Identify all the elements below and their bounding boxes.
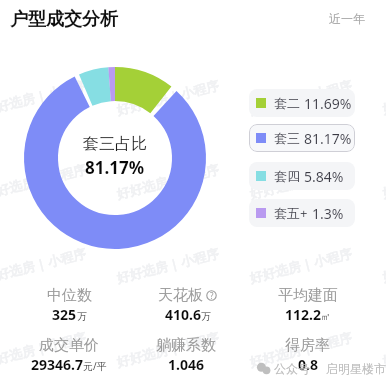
staticText: 成交单价 [39, 336, 99, 355]
other: 说明 [206, 290, 217, 301]
staticText: 81.17% [304, 129, 352, 148]
staticText: 万 [201, 310, 211, 323]
staticText: 平均建面 [278, 286, 338, 305]
staticText: 躺赚系数 [156, 336, 216, 355]
staticText: 1.3% [312, 204, 344, 223]
staticText: 套三占比 [83, 134, 147, 154]
staticText: 325 [52, 305, 77, 324]
staticText: 户型成交分析 [10, 8, 118, 31]
staticText: 112.2 [285, 305, 321, 324]
button[interactable]: 躺赚系数 [124, 336, 248, 374]
button[interactable]: 套二 [249, 89, 355, 117]
staticText: 套四 [274, 168, 300, 184]
staticText: ? [210, 290, 214, 301]
button[interactable]: 成交单价 [7, 336, 131, 374]
staticText: 套五+ [274, 204, 308, 222]
button[interactable]: 平均建面 [246, 286, 370, 324]
button[interactable]: 套五+ [249, 199, 355, 227]
staticText: 元/平 [83, 359, 107, 373]
staticText: 万 [77, 310, 87, 323]
staticText: 中位数 [47, 286, 92, 305]
staticText: 公众号 [274, 361, 310, 376]
button[interactable]: 得房率 [245, 336, 369, 374]
staticText: 天花板 [158, 286, 203, 305]
button[interactable]: 天花板 [125, 286, 249, 324]
staticText: 81.17% [85, 156, 145, 179]
staticText: 得房率 [285, 336, 330, 355]
button[interactable]: 近一年 [329, 11, 365, 26]
staticText: 启明星楼市 [326, 361, 386, 376]
staticText: 29346.7 [31, 355, 83, 374]
staticText: 410.6 [165, 305, 201, 324]
staticText: 11.69% [304, 94, 352, 113]
staticText: 近一年 [329, 11, 365, 26]
staticText: 套三 [274, 130, 300, 146]
staticText: 1.046 [168, 355, 204, 374]
button[interactable]: 套三 [249, 124, 355, 152]
staticText: 套二 [274, 95, 300, 111]
staticText: 5.84% [304, 167, 344, 186]
button[interactable]: 套四 [249, 162, 355, 190]
staticText: ㎡ [321, 310, 331, 323]
staticText: 0.8 [298, 355, 318, 374]
button[interactable]: 中位数 [7, 286, 131, 324]
